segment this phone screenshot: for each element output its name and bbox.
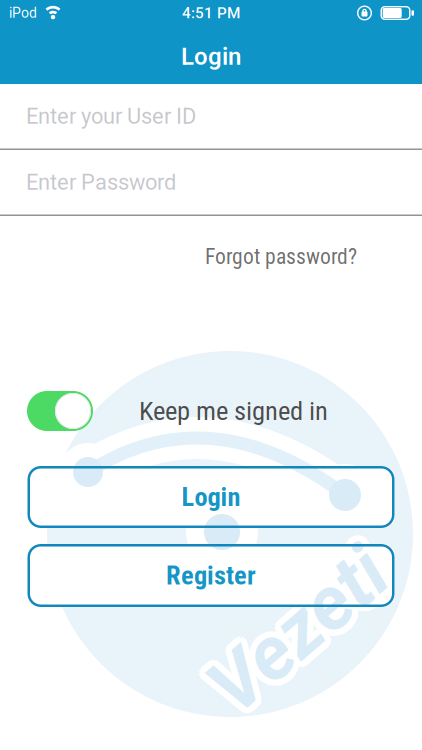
staticText: Vezeti [190, 591, 399, 680]
staticText: 4:51 PM [182, 4, 240, 22]
staticText: Vezeti [193, 585, 402, 675]
button[interactable]: Enter Password [0, 150, 422, 214]
staticText: Vezeti [188, 589, 397, 678]
button[interactable]: Login [27, 466, 394, 528]
staticText: Keep me signed in [139, 395, 328, 427]
staticText: Vezeti [193, 592, 402, 681]
staticText: Vezeti [188, 582, 397, 671]
button[interactable]: Enter your User ID [0, 84, 422, 148]
staticText: Vezeti [197, 580, 406, 669]
button[interactable] [27, 391, 93, 431]
staticText: Vezeti [197, 591, 406, 680]
staticText: Enter Password [26, 169, 176, 195]
staticText: Vezeti [200, 585, 409, 675]
staticText: Register [166, 560, 256, 591]
staticText: Login [181, 42, 241, 70]
button[interactable]: Register [27, 544, 394, 607]
staticText: iPod [9, 5, 37, 21]
staticText: Login [181, 481, 240, 512]
staticText: Vezeti [190, 580, 399, 669]
button[interactable]: Forgot password? [0, 244, 422, 269]
staticText: Vezeti [187, 585, 396, 675]
staticText: Vezeti [199, 589, 408, 678]
staticText: Enter your User ID [26, 103, 196, 129]
staticText: Vezeti [199, 582, 408, 671]
staticText: Vezeti [193, 579, 402, 668]
staticText: Forgot password? [205, 244, 357, 269]
